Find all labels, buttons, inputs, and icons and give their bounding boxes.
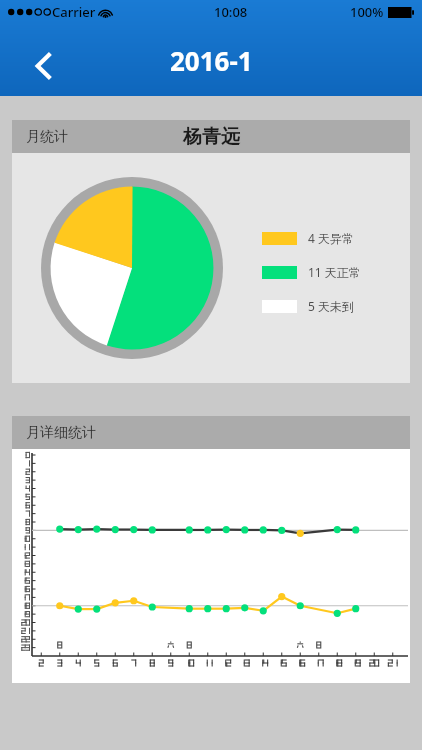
staticText: 月详细统计 <box>26 424 96 442</box>
staticText: 月统计 <box>26 128 68 146</box>
button[interactable]: 月统计 <box>12 120 410 383</box>
button[interactable]: 月详细统计 <box>12 416 410 683</box>
staticText: 10:08 <box>214 3 248 21</box>
staticText: 100% <box>350 3 384 21</box>
staticText: 杨青远 <box>183 125 240 149</box>
staticText: 2016-1 <box>170 43 253 78</box>
button[interactable]: Back <box>18 36 70 96</box>
staticText: Carrier <box>52 3 96 21</box>
staticText: 5 天未到 <box>308 298 354 314</box>
staticText: 11 天正常 <box>308 264 361 280</box>
staticText: 4 天异常 <box>308 230 354 246</box>
